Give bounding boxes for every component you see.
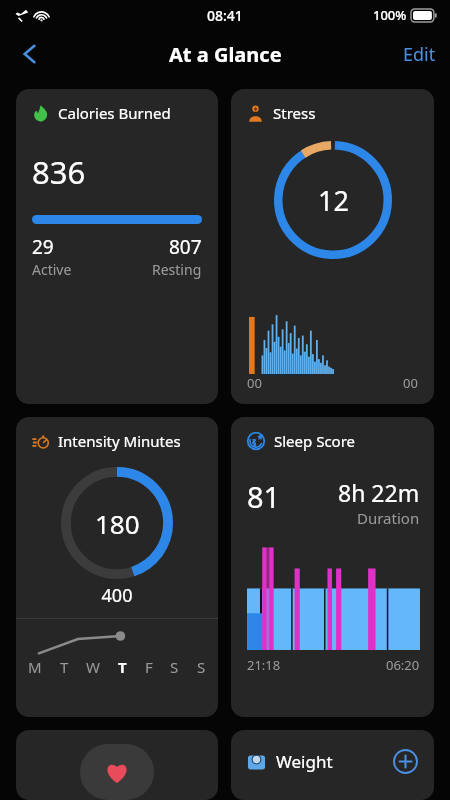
staticText: M: [28, 657, 42, 677]
button[interactable]: Sleep Score: [231, 417, 434, 717]
button[interactable]: Weight: [231, 730, 434, 800]
staticText: 836: [32, 151, 86, 193]
button[interactable]: [16, 730, 218, 800]
staticText: 400: [16, 583, 218, 608]
button[interactable]: Intensity Minutes: [16, 417, 218, 717]
staticText: 29: [32, 234, 54, 260]
staticText: S: [170, 657, 179, 677]
staticText: 180: [95, 506, 140, 541]
staticText: Stress: [273, 103, 316, 123]
staticText: 00: [247, 374, 262, 392]
staticText: 00: [403, 374, 418, 392]
staticText: 81: [247, 477, 281, 516]
staticText: W: [86, 657, 100, 677]
staticText: 807: [169, 234, 202, 260]
staticText: S: [197, 657, 206, 677]
staticText: Sleep Score: [274, 431, 356, 451]
button[interactable]: Calories Burned: [16, 89, 218, 404]
staticText: 8h 22m: [338, 477, 420, 508]
staticText: F: [145, 657, 153, 677]
staticText: Duration: [357, 508, 420, 528]
staticText: Intensity Minutes: [58, 431, 181, 451]
staticText: Edit: [403, 42, 436, 67]
staticText: T: [118, 657, 127, 677]
staticText: T: [60, 657, 69, 677]
button[interactable]: Edit: [403, 42, 436, 67]
staticText: At a Glance: [169, 41, 282, 68]
staticText: 08:41: [207, 6, 243, 25]
staticText: 06:20: [386, 656, 420, 674]
staticText: Weight: [276, 750, 333, 773]
button[interactable]: Back: [8, 32, 52, 76]
button[interactable]: Add weight: [390, 746, 420, 776]
staticText: 100%: [373, 6, 407, 24]
staticText: 21:18: [247, 656, 281, 674]
staticText: Resting: [152, 260, 202, 279]
staticText: 12: [318, 182, 349, 219]
staticText: Calories Burned: [58, 103, 171, 123]
button[interactable]: Stress: [231, 89, 434, 404]
staticText: Active: [32, 260, 72, 279]
